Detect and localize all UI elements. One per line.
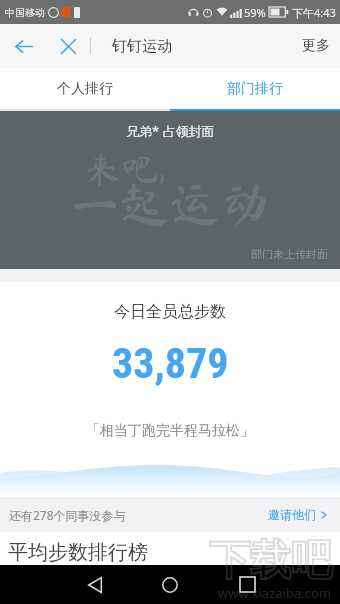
staticText: 33,879 — [112, 339, 229, 388]
staticText: 下载吧 — [209, 535, 332, 587]
button[interactable]: 还有278个同事没参与 — [0, 497, 340, 532]
button[interactable]: Recent apps — [219, 565, 275, 604]
staticText: 今日全员总步数 — [114, 302, 226, 322]
staticText: 邀请他们 — [268, 507, 316, 522]
button[interactable]: 个人排行 — [0, 68, 170, 109]
staticText: 更多 — [302, 37, 330, 55]
button[interactable]: Back — [0, 24, 46, 68]
staticText: 「相当丁跑完半程马拉松」 — [86, 422, 254, 440]
button[interactable]: Close — [46, 24, 90, 68]
staticText: 钉钉运动 — [112, 37, 172, 56]
staticText: 兄弟* 占领封面 — [126, 122, 215, 140]
staticText: 中国移动 — [5, 6, 45, 19]
staticText: 59% — [244, 5, 266, 20]
staticText: 平均步数排行榜 — [8, 540, 148, 565]
staticText: 来吧, — [85, 150, 167, 187]
staticText: 部门未上传封面 — [251, 247, 328, 261]
staticText: 个人排行 — [57, 80, 113, 98]
button[interactable]: 部门排行 — [170, 68, 340, 109]
staticText: 还有278个同事没参与 — [9, 507, 126, 523]
staticText: www.xiazaiba.com — [218, 584, 331, 602]
button[interactable]: Home — [142, 565, 198, 604]
staticText: 一起运动 — [70, 179, 270, 229]
staticText: 部门排行 — [227, 80, 283, 98]
button[interactable]: 更多 — [292, 24, 340, 68]
button[interactable]: Back — [67, 565, 123, 604]
staticText: 下午4:43 — [292, 5, 336, 20]
